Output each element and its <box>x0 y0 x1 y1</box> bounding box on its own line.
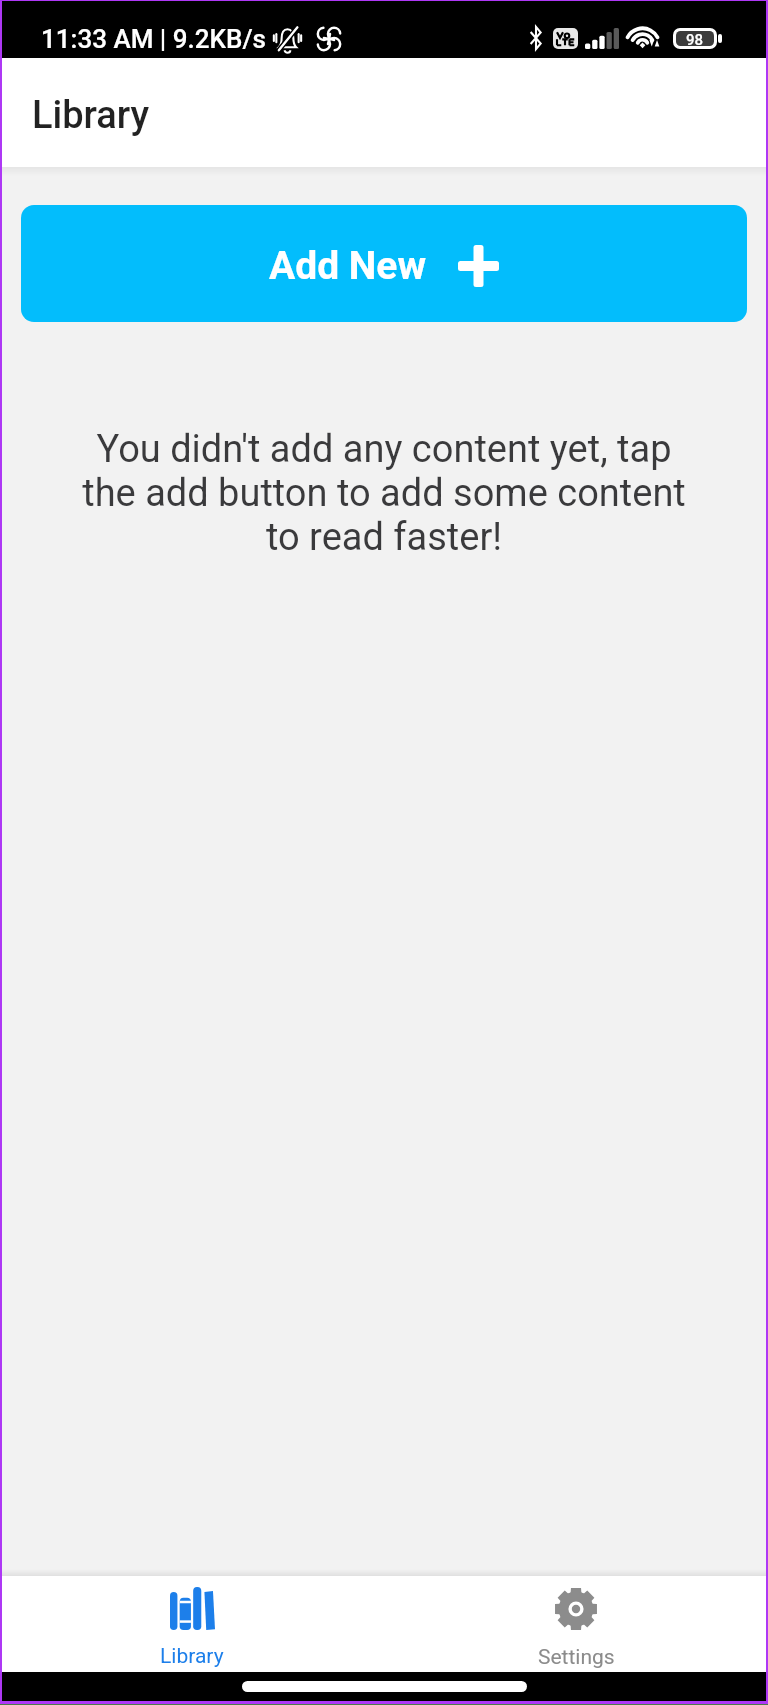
button[interactable]: Library <box>0 1576 384 1672</box>
staticText: Settings <box>538 1645 615 1670</box>
staticText: Library <box>32 93 150 138</box>
button[interactable]: Settings <box>384 1576 768 1672</box>
staticText: 98 <box>686 31 704 46</box>
other: Settings <box>554 1587 598 1631</box>
staticText: Add New <box>269 243 427 289</box>
other: Library <box>170 1587 215 1630</box>
button[interactable]: Add New <box>21 205 747 322</box>
staticText: You didn't add any content yet, tap the … <box>0 427 768 559</box>
staticText: Library <box>160 1644 224 1669</box>
staticText: 11:33 AM | 9.2KB/s <box>41 24 266 54</box>
